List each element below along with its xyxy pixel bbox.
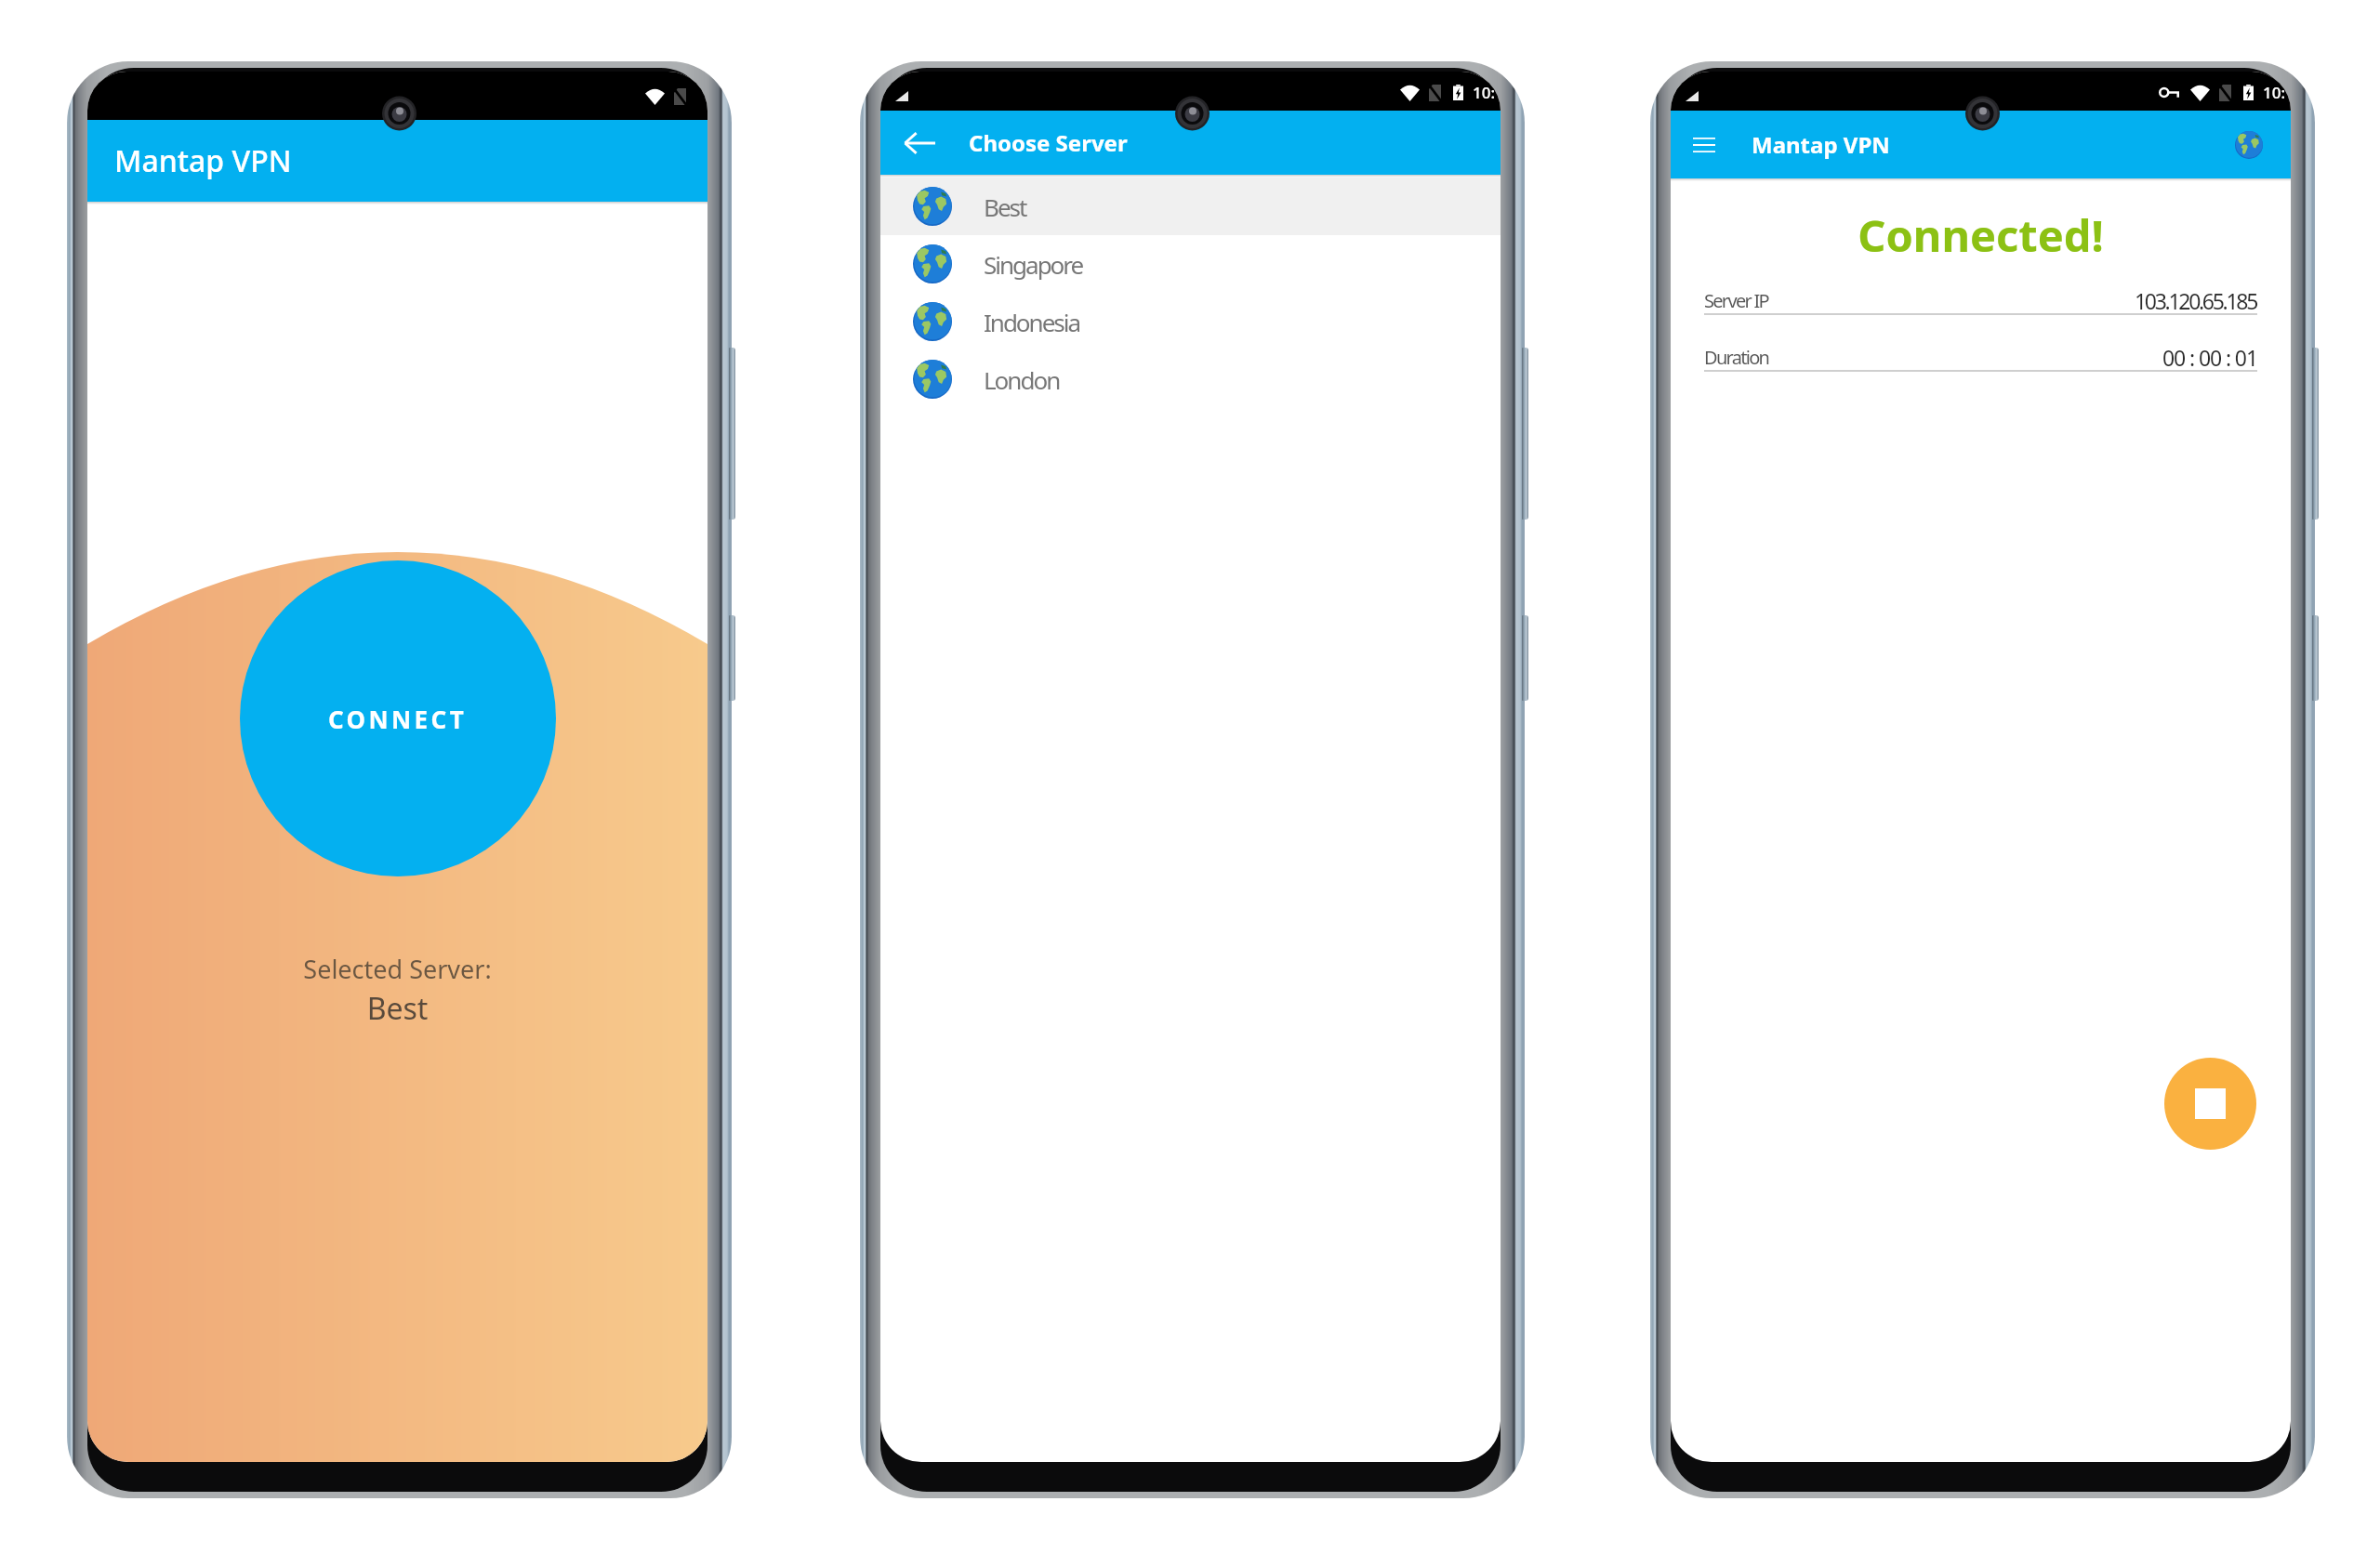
staticText: Singapore — [984, 248, 1083, 281]
staticText: London — [984, 363, 1060, 396]
staticText: Best — [984, 191, 1026, 223]
staticText: Selected Server: — [87, 952, 707, 986]
staticText: 00 : 00 : 01 — [2162, 343, 2257, 372]
button[interactable]: Best — [880, 178, 1501, 235]
button[interactable]: Menu — [1681, 122, 1727, 168]
staticText: Best — [87, 988, 707, 1029]
staticText: Duration — [1704, 345, 1769, 370]
button[interactable]: London — [880, 350, 1501, 408]
staticText: 10: — [1473, 82, 1496, 103]
staticText: Indonesia — [984, 306, 1080, 338]
staticText: Choose Server — [969, 127, 1128, 158]
staticText: Connected! — [1671, 205, 2291, 265]
staticText: Server IP — [1704, 288, 1768, 313]
button[interactable]: Choose server — [2225, 121, 2273, 169]
button[interactable]: Back — [895, 119, 944, 167]
staticText: 103.120.65.185 — [2135, 286, 2257, 315]
button[interactable]: Singapore — [880, 235, 1501, 293]
staticText: Mantap VPN — [114, 140, 292, 181]
button[interactable]: Indonesia — [880, 293, 1501, 350]
button[interactable]: Disconnect — [2164, 1058, 2256, 1150]
staticText: 10: — [2263, 82, 2286, 103]
staticText: CONNECT — [328, 703, 468, 735]
button[interactable]: CONNECT — [240, 560, 556, 876]
staticText: Mantap VPN — [1752, 129, 1890, 160]
